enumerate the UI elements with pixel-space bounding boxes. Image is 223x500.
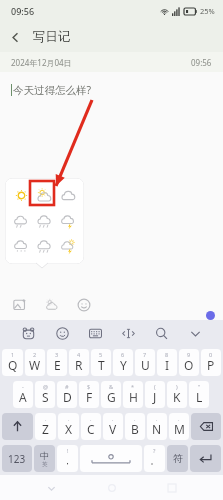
staticText: . bbox=[45, 415, 47, 422]
staticText: U bbox=[141, 357, 150, 373]
staticText: X bbox=[65, 421, 73, 437]
button[interactable]: Weather 7 bbox=[33, 235, 56, 258]
button[interactable]: Back bbox=[0, 22, 30, 52]
button[interactable]: . bbox=[35, 413, 56, 440]
staticText: $ bbox=[87, 383, 91, 390]
button[interactable]: Shift bbox=[2, 413, 33, 440]
button[interactable]: Weather 2 bbox=[57, 184, 80, 207]
button[interactable]: $ bbox=[79, 381, 99, 408]
button[interactable]: Hide keyboard bbox=[184, 322, 206, 344]
staticText: 中 bbox=[40, 450, 49, 461]
staticText: P bbox=[207, 357, 215, 373]
staticText: 7 bbox=[143, 351, 147, 358]
button[interactable]: ! bbox=[57, 445, 78, 472]
button[interactable]: 1 bbox=[2, 349, 23, 376]
staticText: A bbox=[19, 389, 27, 405]
button[interactable]: 符 bbox=[167, 445, 188, 472]
button[interactable]: - bbox=[13, 381, 33, 408]
button[interactable]: 4 bbox=[69, 349, 89, 376]
button[interactable]: Back bbox=[41, 478, 61, 498]
button[interactable]: Emoji bbox=[51, 322, 73, 344]
button[interactable]: Weather 0 bbox=[10, 184, 33, 207]
button[interactable]: Home bbox=[102, 478, 122, 498]
staticText: M bbox=[174, 421, 185, 437]
staticText: 0 bbox=[209, 351, 213, 358]
staticText: - bbox=[22, 383, 24, 390]
button[interactable]: # bbox=[57, 381, 77, 408]
staticText: 8 bbox=[165, 351, 169, 358]
staticText: 4 bbox=[77, 351, 81, 358]
button[interactable]: @ bbox=[35, 381, 55, 408]
staticText: 2 bbox=[33, 351, 37, 358]
button[interactable]: Weather 1 bbox=[33, 184, 56, 207]
staticText: Z bbox=[42, 421, 49, 437]
staticText: 25% bbox=[200, 6, 215, 16]
staticText: . bbox=[68, 415, 70, 422]
button[interactable]: 0 bbox=[201, 349, 221, 376]
staticText: 今天过得怎么样? bbox=[13, 83, 92, 97]
staticText: ) bbox=[176, 383, 178, 390]
button[interactable]: 6 bbox=[113, 349, 133, 376]
staticText: V bbox=[109, 421, 117, 437]
staticText: O bbox=[184, 357, 194, 373]
button[interactable]: 5 bbox=[91, 349, 111, 376]
staticText: 2024年12月04日 bbox=[11, 57, 72, 68]
staticText: 6 bbox=[121, 351, 125, 358]
button[interactable]: . bbox=[125, 413, 145, 440]
button[interactable]: . bbox=[169, 413, 189, 440]
button[interactable]: Space bbox=[80, 445, 142, 472]
button[interactable]: 7 bbox=[135, 349, 155, 376]
staticText: 09:56 bbox=[11, 5, 35, 17]
button[interactable]: . bbox=[103, 413, 123, 440]
staticText: # bbox=[65, 383, 69, 390]
staticText: E bbox=[54, 357, 61, 373]
staticText: 09:56 bbox=[191, 57, 212, 68]
button[interactable]: Backspace bbox=[191, 413, 221, 440]
staticText: 英 bbox=[42, 461, 48, 468]
button[interactable]: ) bbox=[167, 381, 187, 408]
staticText: T bbox=[98, 357, 105, 373]
button[interactable]: 9 bbox=[179, 349, 199, 376]
button[interactable]: Enter bbox=[190, 445, 221, 472]
button[interactable]: Weather 6 bbox=[10, 235, 33, 258]
staticText: . bbox=[156, 415, 158, 422]
button[interactable]: Weather 4 bbox=[33, 210, 56, 233]
staticText: H bbox=[129, 389, 138, 405]
button[interactable]: 123 bbox=[2, 445, 32, 472]
button[interactable]: Insert image bbox=[9, 294, 31, 316]
button[interactable]: Move cursor bbox=[117, 322, 139, 344]
button[interactable]: . bbox=[58, 413, 79, 440]
staticText: W bbox=[29, 357, 41, 373]
button[interactable]: 2 bbox=[25, 349, 45, 376]
staticText: & bbox=[109, 383, 114, 390]
staticText: C bbox=[87, 421, 95, 437]
button[interactable]: Search bbox=[150, 322, 172, 344]
button[interactable]: * bbox=[123, 381, 143, 408]
button[interactable]: 3 bbox=[47, 349, 67, 376]
staticText: D bbox=[63, 389, 72, 405]
button[interactable]: Recents bbox=[162, 478, 182, 498]
button[interactable]: Insert weather bbox=[41, 294, 63, 316]
staticText: J bbox=[153, 389, 157, 405]
button[interactable]: ? bbox=[144, 445, 165, 472]
button[interactable]: ( bbox=[145, 381, 165, 408]
staticText: Y bbox=[120, 357, 127, 373]
button[interactable]: 8 bbox=[157, 349, 177, 376]
staticText: I bbox=[165, 357, 170, 373]
staticText: " bbox=[198, 383, 201, 390]
staticText: 9 bbox=[187, 351, 191, 358]
button[interactable]: Insert emoji bbox=[73, 294, 95, 316]
button[interactable]: . bbox=[81, 413, 101, 440]
button[interactable]: " bbox=[189, 381, 209, 408]
staticText: Q bbox=[8, 357, 18, 373]
button[interactable]: & bbox=[101, 381, 121, 408]
button[interactable]: Weather 5 bbox=[57, 210, 80, 233]
button[interactable]: 中 bbox=[34, 445, 55, 472]
button[interactable]: Keyboard layout bbox=[84, 322, 106, 344]
button[interactable]: Weather 3 bbox=[10, 210, 33, 233]
button[interactable]: Weather 8 bbox=[57, 235, 80, 258]
button[interactable]: . bbox=[147, 413, 167, 440]
staticText: 123 bbox=[8, 452, 26, 466]
button[interactable]: Stickers bbox=[17, 322, 39, 344]
staticText: R bbox=[75, 357, 83, 373]
